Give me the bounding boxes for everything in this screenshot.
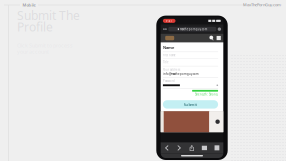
staticText: maxthepornguy.com xyxy=(180,27,207,31)
staticText: Submit xyxy=(183,102,197,107)
staticText: AA xyxy=(163,27,167,31)
staticText: MaxThePornGuy.com xyxy=(243,2,281,7)
button[interactable]: Forward xyxy=(176,145,182,151)
button[interactable]: Share xyxy=(189,145,195,151)
staticText: Title xyxy=(163,60,169,64)
staticText: Password xyxy=(163,79,175,83)
staticText: info@maxthepornguy.com xyxy=(163,72,198,76)
button[interactable]: Bookmarks xyxy=(201,145,207,151)
staticText: Strength: Strong xyxy=(195,93,218,96)
button[interactable]: Tabs xyxy=(214,145,220,151)
button[interactable]: Back xyxy=(164,145,170,151)
staticText: Submit The Profile xyxy=(17,7,80,35)
staticText: First name xyxy=(163,54,176,57)
staticText: Mobile xyxy=(22,2,35,8)
staticText: Name xyxy=(163,45,174,50)
button[interactable]: Submit xyxy=(163,100,218,109)
staticText: Your address xyxy=(163,68,180,71)
staticText: 9:41 xyxy=(166,19,173,23)
